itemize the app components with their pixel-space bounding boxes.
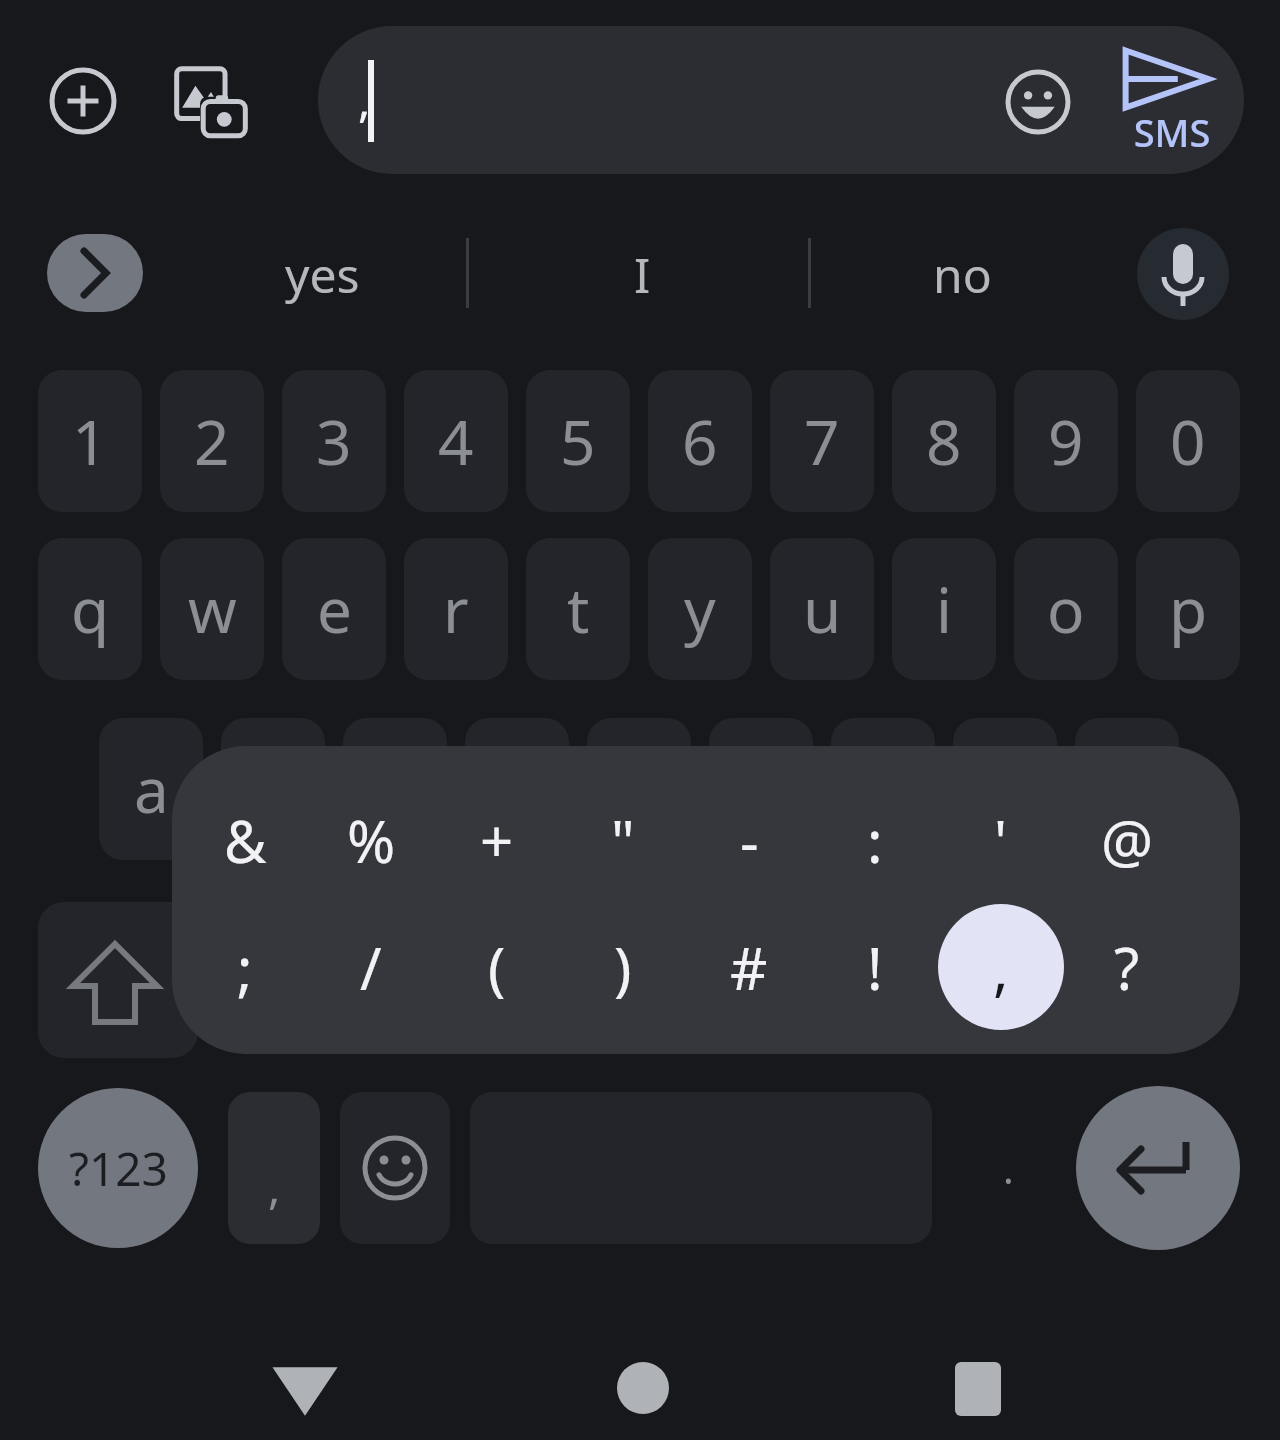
staticText: t xyxy=(567,567,590,651)
staticText: y xyxy=(684,567,716,651)
button[interactable]: i xyxy=(892,538,996,680)
button[interactable]: + xyxy=(434,777,560,903)
button[interactable]: , xyxy=(938,904,1064,1030)
staticText: o xyxy=(1047,567,1085,651)
button[interactable]: . xyxy=(962,1092,1054,1244)
button[interactable]: h xyxy=(709,718,813,860)
staticText: 7 xyxy=(804,399,840,483)
button[interactable]: e xyxy=(282,538,386,680)
button[interactable]: , xyxy=(318,26,1244,174)
button[interactable]: @ xyxy=(1064,777,1190,903)
button[interactable]: ( xyxy=(434,904,560,1030)
button[interactable]: ) xyxy=(560,904,686,1030)
button[interactable]: # xyxy=(686,904,812,1030)
button[interactable]: 2 xyxy=(160,370,264,512)
button[interactable]: l xyxy=(1075,718,1179,860)
staticText: ; xyxy=(237,928,253,1007)
staticText: . xyxy=(1003,1141,1014,1195)
button[interactable]: Expand suggestions xyxy=(47,234,143,312)
button[interactable]: Home xyxy=(617,1362,669,1414)
button[interactable]: Emoji keyboard xyxy=(340,1092,450,1244)
staticText: 4 xyxy=(438,399,474,483)
button[interactable]: ? xyxy=(1064,904,1190,1030)
button[interactable]: ; xyxy=(182,904,308,1030)
button[interactable]: ! xyxy=(812,904,938,1030)
button[interactable]: Emoji xyxy=(1005,69,1071,135)
button[interactable]: / xyxy=(308,904,434,1030)
staticText: a xyxy=(134,747,169,831)
staticText: " xyxy=(611,801,635,880)
button[interactable]: f xyxy=(465,718,569,860)
staticText: ! xyxy=(867,928,883,1007)
button[interactable]: q xyxy=(38,538,142,680)
staticText: : xyxy=(867,801,883,880)
button[interactable]: Recent apps xyxy=(955,1362,1001,1416)
button[interactable]: , xyxy=(228,1092,320,1244)
staticText: 3 xyxy=(316,399,352,483)
staticText: 6 xyxy=(682,399,718,483)
button[interactable]: yes xyxy=(190,228,455,320)
button[interactable]: Add attachment xyxy=(48,66,118,136)
button[interactable]: 1 xyxy=(38,370,142,512)
button[interactable]: w xyxy=(160,538,264,680)
button[interactable]: ?123 xyxy=(38,1088,198,1248)
staticText: no xyxy=(933,242,992,307)
button[interactable]: a xyxy=(99,718,203,860)
staticText: k xyxy=(988,747,1022,831)
button[interactable]: j xyxy=(831,718,935,860)
staticText: yes xyxy=(285,242,360,307)
staticText: , xyxy=(993,928,1009,1007)
button[interactable]: o xyxy=(1014,538,1118,680)
button[interactable]: - xyxy=(686,777,812,903)
button[interactable]: % xyxy=(308,777,434,903)
staticText: w xyxy=(188,567,237,651)
button[interactable]: p xyxy=(1136,538,1240,680)
button[interactable]: g xyxy=(587,718,691,860)
staticText: l xyxy=(1119,747,1135,831)
button[interactable]: Voice input xyxy=(1137,228,1229,320)
staticText: + xyxy=(480,801,514,880)
staticText: i xyxy=(936,567,952,651)
staticText: ) xyxy=(614,928,632,1007)
button[interactable]: y xyxy=(648,538,752,680)
staticText: 5 xyxy=(560,399,596,483)
staticText: ?123 xyxy=(69,1137,168,1200)
staticText: ( xyxy=(488,928,506,1007)
button[interactable]: SMS xyxy=(1118,48,1230,156)
staticText: SMS xyxy=(1126,106,1218,154)
button[interactable]: 3 xyxy=(282,370,386,512)
button[interactable]: I xyxy=(530,228,755,320)
button[interactable]: 8 xyxy=(892,370,996,512)
button[interactable]: 4 xyxy=(404,370,508,512)
button[interactable]: Shift xyxy=(38,902,198,1058)
button[interactable]: Enter xyxy=(1076,1086,1240,1250)
button[interactable]: 7 xyxy=(770,370,874,512)
staticText: r xyxy=(443,567,469,651)
button[interactable]: Back xyxy=(268,1364,342,1418)
button[interactable]: & xyxy=(182,777,308,903)
staticText: p xyxy=(1169,567,1208,651)
button[interactable]: ' xyxy=(938,777,1064,903)
staticText: / xyxy=(360,928,382,1007)
staticText: 8 xyxy=(926,399,962,483)
button[interactable]: k xyxy=(953,718,1057,860)
button[interactable]: r xyxy=(404,538,508,680)
button[interactable]: " xyxy=(560,777,686,903)
staticText: 1 xyxy=(72,399,108,483)
button[interactable]: Send image xyxy=(172,64,250,142)
staticText: , xyxy=(268,1155,281,1218)
staticText: I xyxy=(634,242,651,307)
button[interactable]: s xyxy=(221,718,325,860)
staticText: ' xyxy=(994,801,1008,880)
button[interactable]: no xyxy=(830,228,1095,320)
button[interactable]: 9 xyxy=(1014,370,1118,512)
button[interactable]: u xyxy=(770,538,874,680)
button[interactable]: : xyxy=(812,777,938,903)
button[interactable]: 5 xyxy=(526,370,630,512)
button[interactable]: t xyxy=(526,538,630,680)
button[interactable]: 6 xyxy=(648,370,752,512)
button[interactable]: d xyxy=(343,718,447,860)
button[interactable]: 0 xyxy=(1136,370,1240,512)
